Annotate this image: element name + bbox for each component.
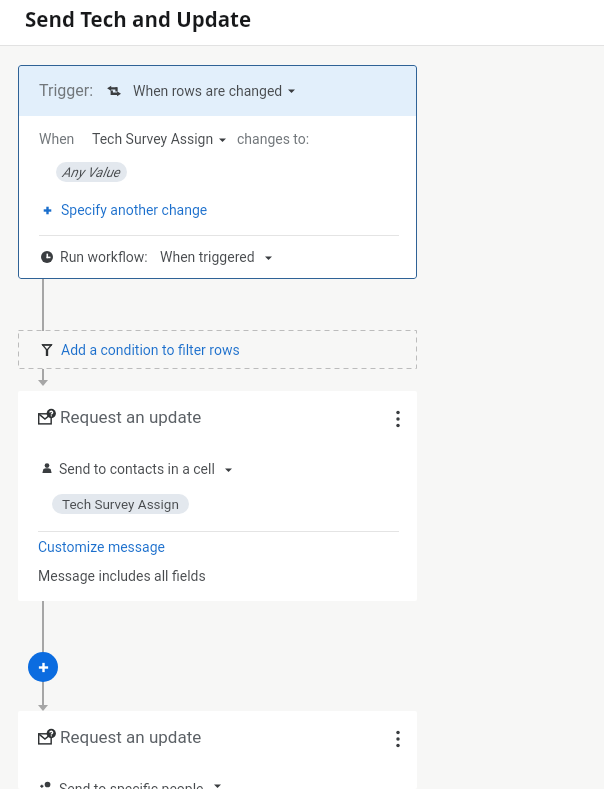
- staticText: Send to contacts in a cell: [59, 461, 215, 477]
- button[interactable]: Add a condition to filter rows: [18, 330, 417, 369]
- staticText: When rows are changed: [133, 83, 283, 99]
- button[interactable]: Specify another change: [39, 202, 208, 218]
- staticText: Specify another change: [61, 202, 208, 218]
- staticText: Send to specific people: [59, 781, 204, 789]
- button[interactable]: Add step: [28, 652, 58, 682]
- button[interactable]: Customize message: [38, 539, 165, 555]
- button[interactable]: More options: [385, 726, 411, 752]
- staticText: Add a condition to filter rows: [61, 342, 240, 358]
- staticText: When triggered: [160, 249, 255, 265]
- staticText: Any Value: [62, 164, 120, 180]
- button[interactable]: Send to specific people: [38, 781, 221, 789]
- button[interactable]: Tech Survey Assign: [52, 494, 189, 514]
- staticText: Tech Survey Assign: [92, 131, 214, 147]
- button[interactable]: Send to contacts in a cell: [38, 461, 232, 477]
- staticText: When: [39, 131, 75, 147]
- staticText: Message includes all fields: [38, 568, 206, 584]
- button[interactable]: Tech Survey Assign: [92, 131, 226, 147]
- staticText: Trigger:: [39, 81, 94, 100]
- staticText: changes to:: [237, 131, 310, 147]
- button[interactable]: More options: [385, 406, 411, 432]
- staticText: Request an update: [60, 727, 202, 747]
- staticText: Request an update: [60, 407, 202, 427]
- button[interactable]: Any Value: [56, 162, 127, 182]
- staticText: Run workflow:: [60, 249, 148, 265]
- button[interactable]: Trigger:: [18, 65, 417, 116]
- staticText: Send Tech and Update: [25, 5, 252, 33]
- staticText: Tech Survey Assign: [62, 496, 179, 512]
- button[interactable]: When triggered: [160, 249, 272, 265]
